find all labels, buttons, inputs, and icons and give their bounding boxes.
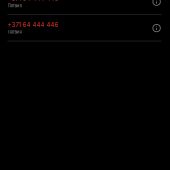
staticText: Латвия: [7, 3, 21, 8]
staticText: +371 64 444 446: [7, 0, 58, 2]
button[interactable]: +371 64 444 446: [0, 0, 170, 170]
staticText: Латвия: [7, 29, 21, 35]
staticText: +371 64 444 446: [7, 22, 58, 28]
button[interactable]: +371 64 444 446: [0, 0, 170, 170]
